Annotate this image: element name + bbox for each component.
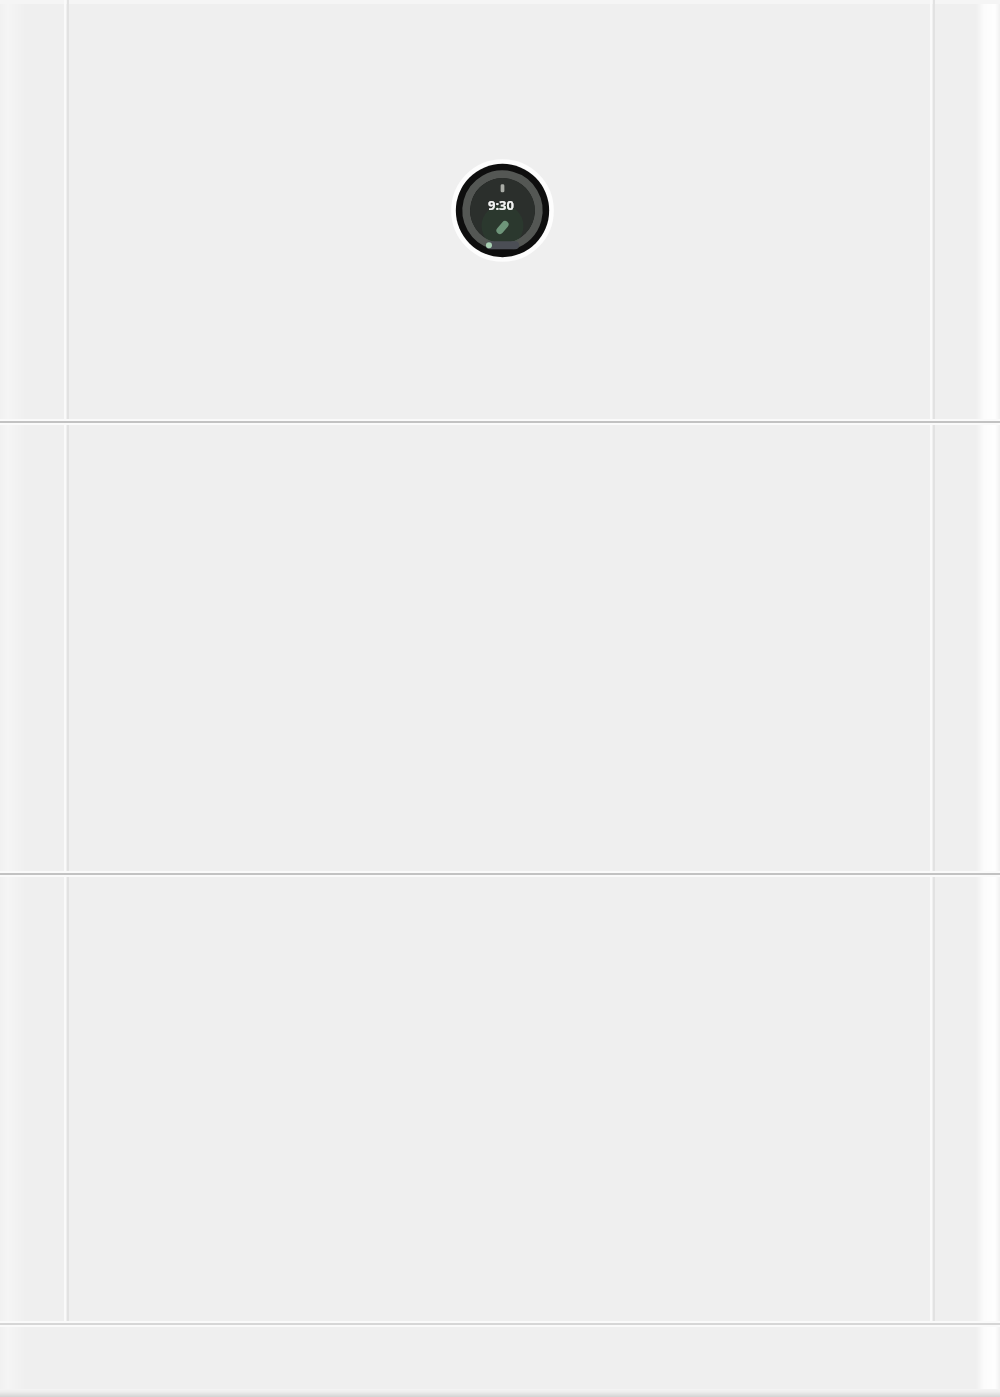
- button[interactable]: Tiles tab: [334, 1323, 667, 1397]
- button[interactable]: Settings tab: [667, 1323, 1000, 1397]
- staticText: 9:30: [488, 196, 514, 214]
- button[interactable]: Complications card: [0, 421, 1000, 873]
- button[interactable]: Watch face preview card: [0, 0, 1000, 421]
- button[interactable]: Styles card: [0, 873, 1000, 1323]
- button[interactable]: Watch faces tab: [0, 1323, 334, 1397]
- button[interactable]: Watch face preview, 9:30: [446, 154, 559, 267]
